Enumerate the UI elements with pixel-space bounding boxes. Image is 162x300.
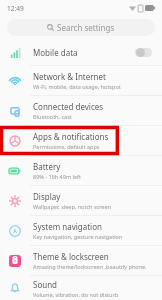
staticText: Bluetooth, cast <box>33 113 72 120</box>
button[interactable]: Apps & notifications <box>0 126 162 156</box>
staticText: Theme & lockscreen <box>33 251 109 262</box>
staticText: Amazing theme/lockscreen ,beautify phone… <box>33 263 147 270</box>
button[interactable]: Search settings <box>7 19 155 36</box>
button[interactable]: System navigation <box>0 216 162 246</box>
staticText: Volume, vibration, do not disturb <box>33 291 119 298</box>
staticText: Display <box>33 191 61 202</box>
staticText: Mobile data <box>33 47 78 58</box>
button[interactable]: Connected devices <box>0 96 162 126</box>
button[interactable]: Battery <box>0 156 162 186</box>
staticText: Wi-Fi, mobile, data usage, hotspot <box>33 83 121 90</box>
staticText: Key navigation, gesture navigation <box>33 233 123 240</box>
button[interactable]: Mobile data <box>0 39 162 65</box>
button[interactable]: Theme & lockscreen <box>0 246 162 276</box>
button[interactable]: Network & Internet <box>0 66 162 96</box>
staticText: Sound <box>33 279 58 290</box>
staticText: Network & Internet <box>33 71 106 82</box>
staticText: Apps & notifications <box>33 131 109 142</box>
staticText: Connected devices <box>33 101 104 112</box>
staticText: Battery <box>33 161 61 172</box>
staticText: Permissions, default apps <box>33 143 100 150</box>
staticText: System navigation <box>33 221 102 232</box>
staticText: Search settings <box>57 22 115 33</box>
staticText: Wallpaper, sleep, notch screen <box>33 203 111 210</box>
button[interactable]: Display <box>0 186 162 216</box>
staticText: 89% - 16h 49m left <box>33 173 81 180</box>
staticText: 12:49 <box>7 4 24 13</box>
button[interactable]: Sound <box>0 276 162 300</box>
